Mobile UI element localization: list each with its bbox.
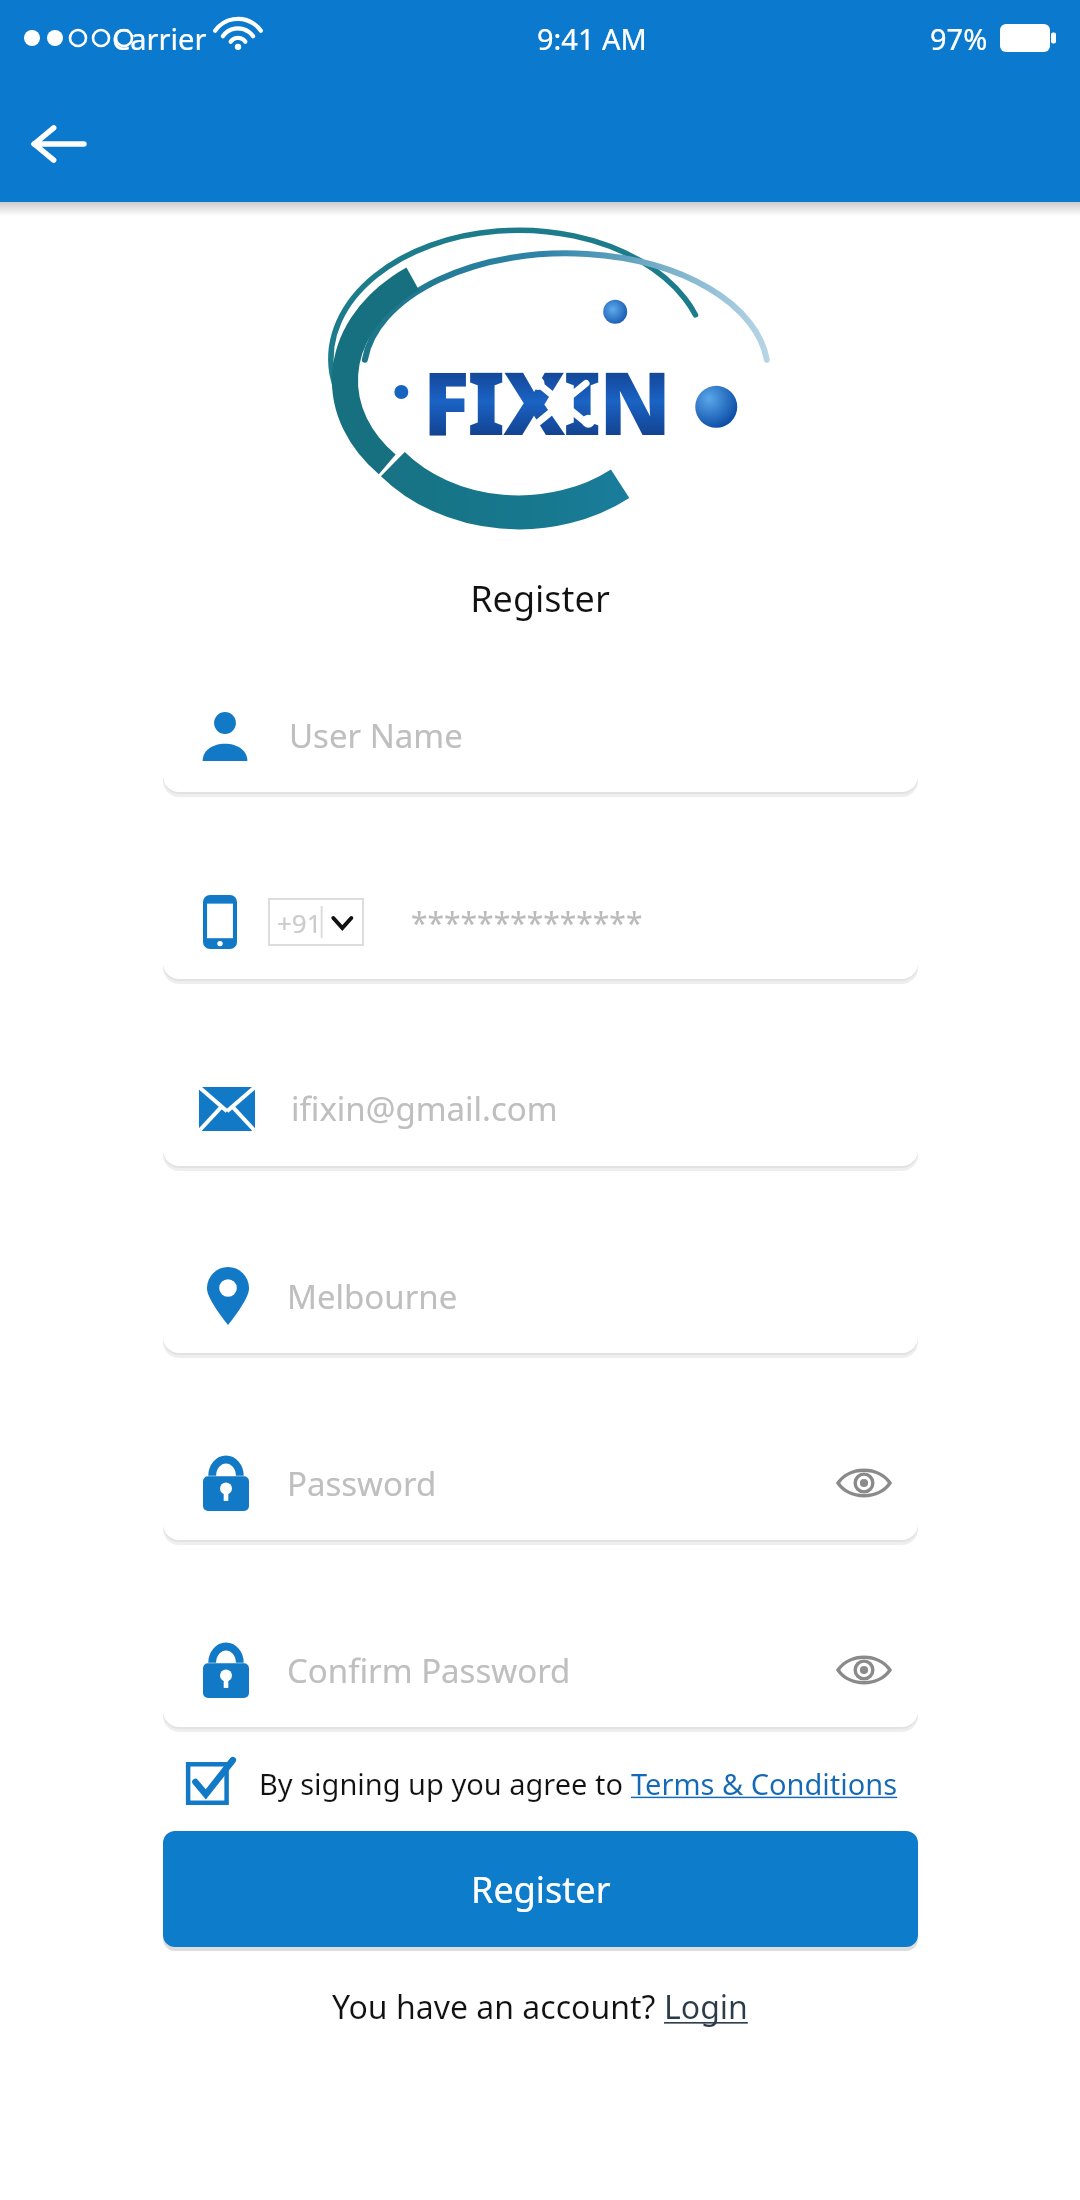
- staticText: ifixin@gmail.com: [291, 1086, 558, 1131]
- staticText: Confirm Password: [287, 1648, 571, 1693]
- staticText: Melbourne: [287, 1274, 458, 1319]
- staticText: Terms & Conditions: [631, 1764, 898, 1803]
- button[interactable]: Register: [163, 1831, 918, 1947]
- staticText: +91: [277, 905, 322, 940]
- staticText: User Name: [289, 713, 463, 758]
- button[interactable]: Terms & Conditions: [631, 1764, 898, 1803]
- button[interactable]: By signing up you agree to: [163, 1757, 918, 1809]
- staticText: By signing up you agree to: [259, 1764, 631, 1803]
- staticText: 97%: [930, 19, 988, 58]
- staticText: Carrier: [112, 19, 207, 58]
- button[interactable]: Show password: [824, 1630, 904, 1710]
- staticText: Register: [470, 574, 610, 623]
- button[interactable]: Country code: [269, 899, 363, 945]
- button[interactable]: Login: [664, 1985, 748, 2029]
- staticText: Password: [287, 1461, 437, 1506]
- button[interactable]: Melbourne: [163, 1238, 918, 1353]
- staticText: Login: [664, 1985, 748, 2029]
- button[interactable]: Confirm Password: [163, 1612, 918, 1727]
- button[interactable]: Password: [163, 1425, 918, 1540]
- button[interactable]: ifixin@gmail.com: [163, 1051, 918, 1166]
- button[interactable]: User Name: [163, 677, 918, 792]
- staticText: You have an account?: [332, 1985, 664, 2029]
- staticText: **************: [411, 902, 643, 943]
- button[interactable]: Country code: [163, 864, 918, 979]
- staticText: FIXIN: [423, 343, 669, 460]
- button[interactable]: Back: [10, 96, 106, 192]
- staticText: 9:41 AM: [537, 19, 647, 58]
- staticText: Register: [471, 1865, 611, 1914]
- button[interactable]: Show password: [824, 1443, 904, 1523]
